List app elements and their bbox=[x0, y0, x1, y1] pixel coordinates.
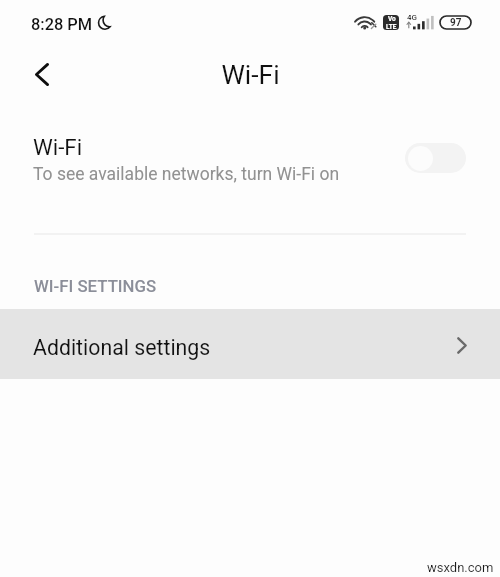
staticText: Additional settings bbox=[33, 335, 457, 360]
button[interactable]: Back bbox=[20, 52, 64, 96]
button[interactable]: Wi-Fi bbox=[0, 122, 500, 198]
staticText: WI-FI SETTINGS bbox=[34, 276, 157, 296]
staticText: To see available networks, turn Wi-Fi on bbox=[33, 164, 340, 185]
button[interactable]: Additional settings bbox=[0, 309, 500, 379]
staticText: 8:28 PM bbox=[31, 15, 93, 34]
staticText: Vo bbox=[388, 15, 396, 23]
staticText: LTE bbox=[386, 23, 397, 30]
staticText: 4G bbox=[407, 13, 417, 22]
staticText: Wi-Fi bbox=[33, 134, 83, 160]
staticText: 97 bbox=[450, 17, 462, 29]
staticText: Wi-Fi bbox=[221, 60, 280, 91]
staticText: wsxdn.com bbox=[427, 560, 494, 575]
button[interactable]: Wi-Fi switch bbox=[405, 143, 466, 173]
